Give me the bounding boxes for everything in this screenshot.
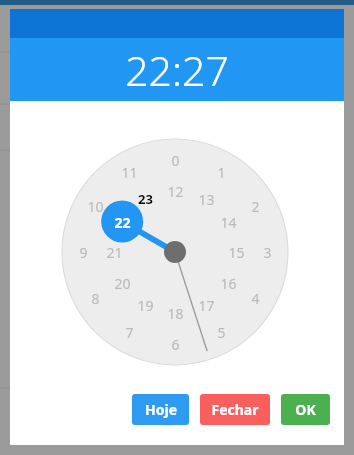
staticText: 19 xyxy=(137,296,154,314)
staticText: 12 xyxy=(167,182,184,200)
staticText: 13 xyxy=(198,190,215,208)
staticText: 22 xyxy=(114,213,131,231)
staticText: 23 xyxy=(138,190,153,208)
staticText: 8 xyxy=(91,289,100,307)
staticText: 0 xyxy=(171,151,180,169)
staticText: 14 xyxy=(220,213,237,231)
staticText: 21 xyxy=(106,243,123,261)
staticText: 10 xyxy=(87,197,104,215)
staticText: 1 xyxy=(217,163,226,181)
staticText: 2 xyxy=(251,197,260,215)
staticText: OK xyxy=(295,400,316,419)
button[interactable]: OK xyxy=(281,394,330,425)
button[interactable]: 22:27 xyxy=(10,38,344,101)
staticText: 16 xyxy=(220,274,237,292)
staticText: 17 xyxy=(198,296,215,314)
staticText: 22:27 xyxy=(125,42,229,98)
staticText: 20 xyxy=(114,274,131,292)
staticText: Fechar xyxy=(211,400,259,419)
staticText: 9 xyxy=(79,243,88,261)
button[interactable] xyxy=(10,9,344,445)
other: Hour selector clock, 22 selected xyxy=(10,9,344,445)
staticText: 5 xyxy=(217,323,226,341)
staticText: 15 xyxy=(228,243,245,261)
staticText: 6 xyxy=(171,335,180,353)
staticText: 3 xyxy=(263,243,272,261)
button[interactable]: Hoje xyxy=(132,394,189,425)
staticText: 7 xyxy=(125,323,134,341)
staticText: Hoje xyxy=(145,400,177,419)
staticText: 11 xyxy=(121,163,138,181)
button[interactable]: Fechar xyxy=(200,394,270,425)
staticText: 18 xyxy=(167,304,184,322)
staticText: 4 xyxy=(251,289,260,307)
